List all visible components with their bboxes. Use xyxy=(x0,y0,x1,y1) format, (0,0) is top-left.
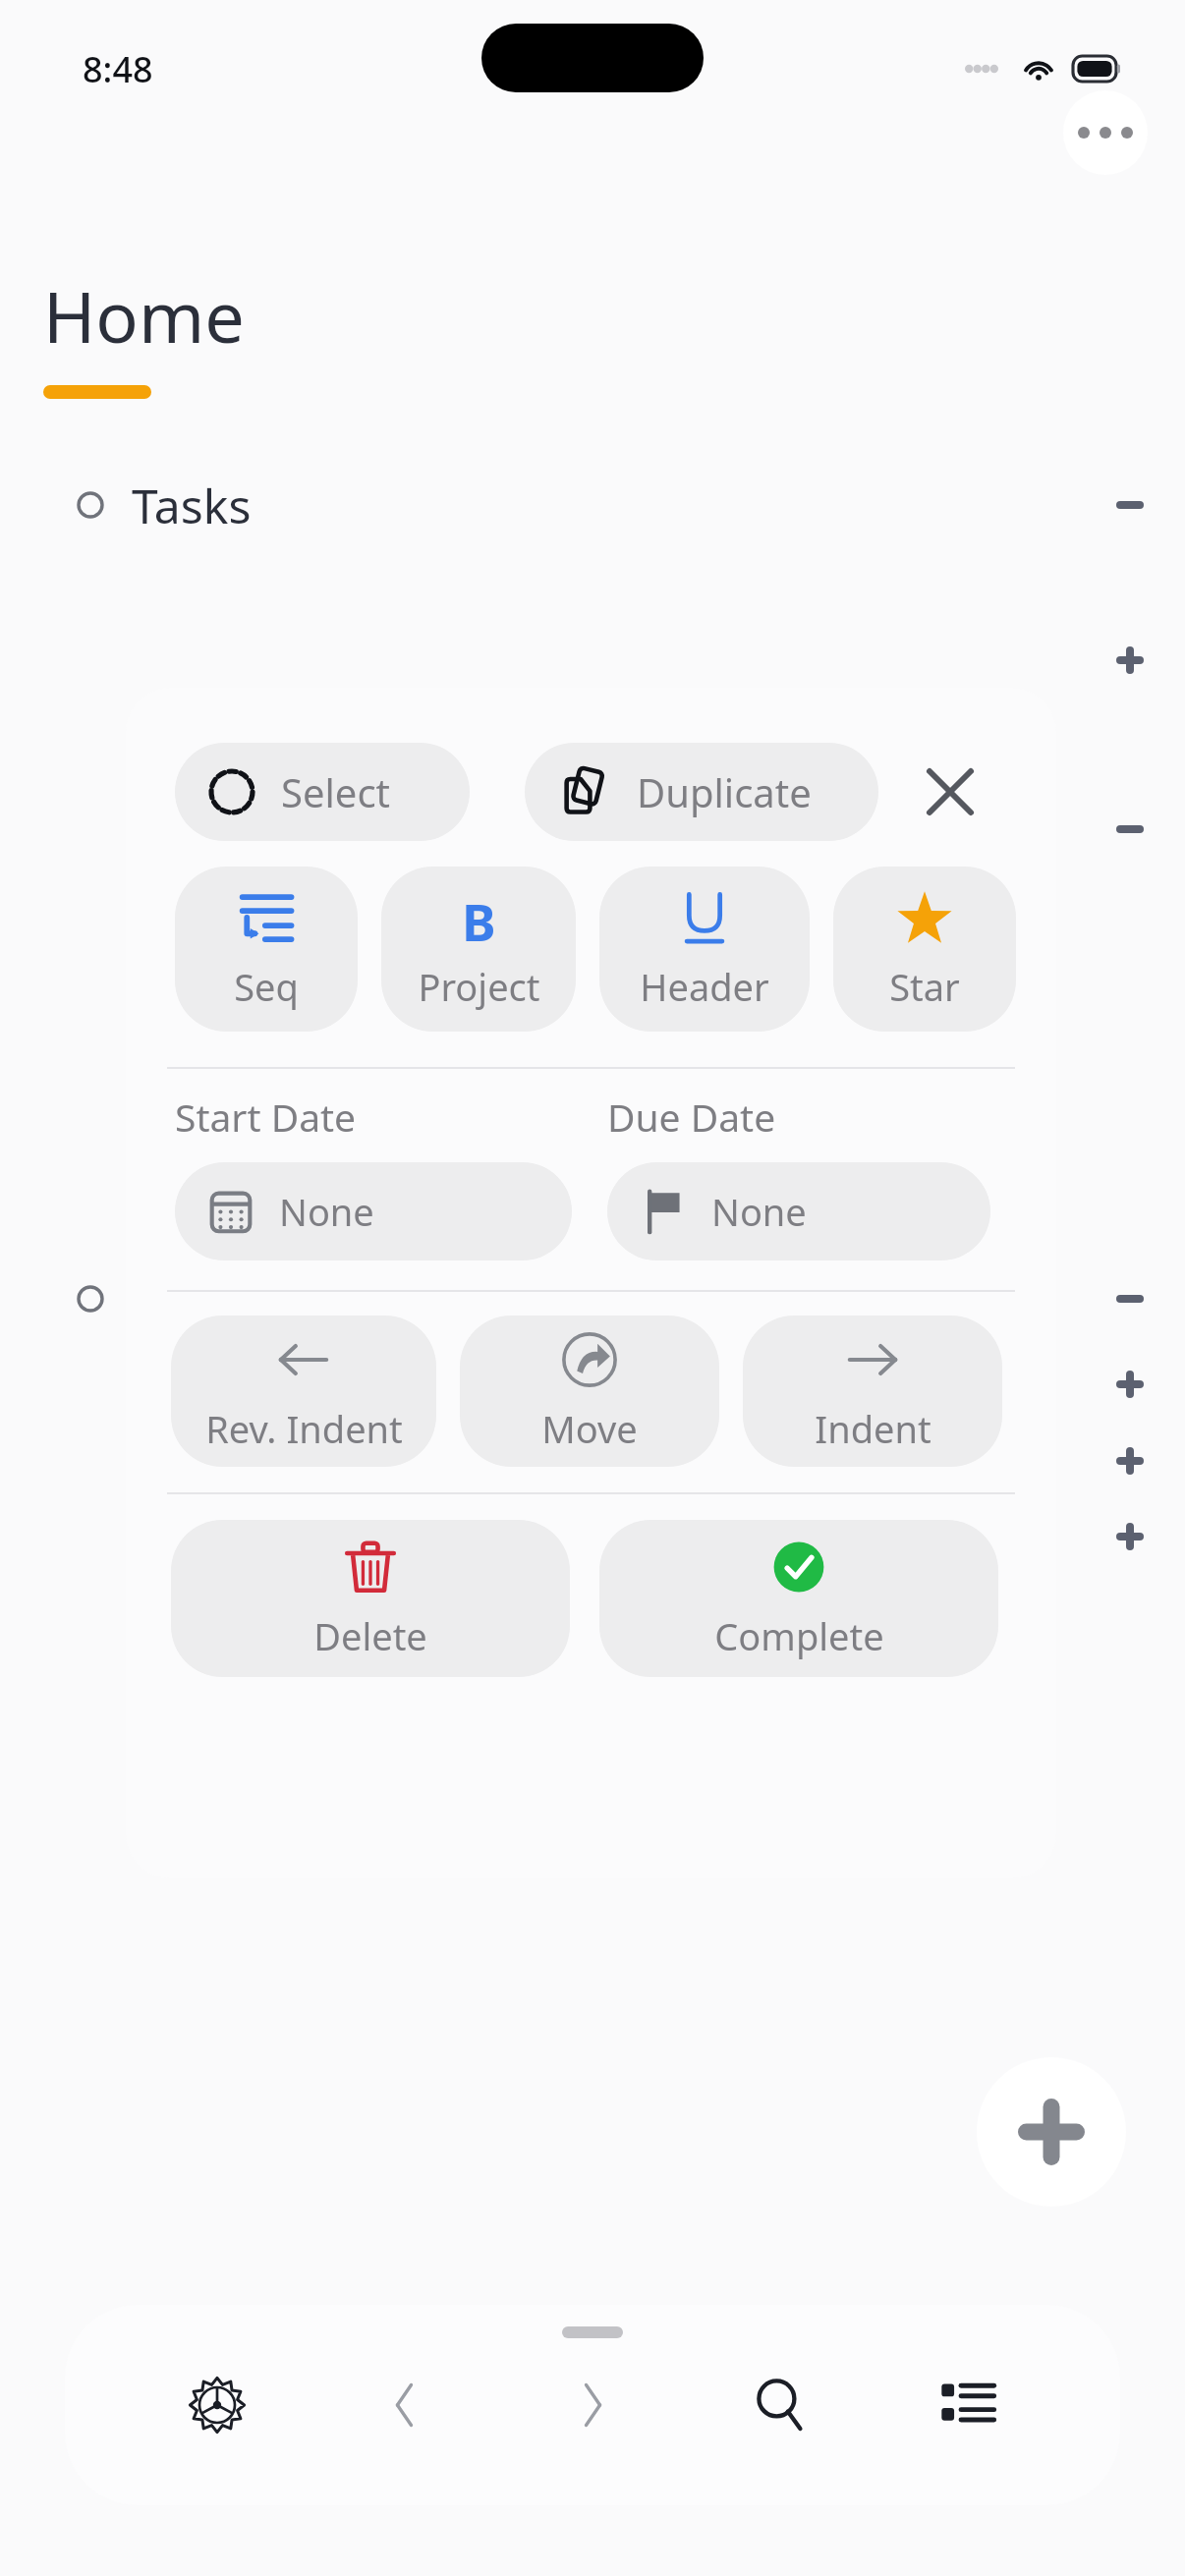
staticText: None xyxy=(711,1186,807,1237)
staticText: Home xyxy=(43,267,245,364)
staticText: Move xyxy=(541,1403,638,1454)
staticText: Duplicate xyxy=(637,765,812,818)
staticText: Indent xyxy=(815,1403,931,1454)
button[interactable]: Personal xyxy=(0,1346,1185,1423)
staticText: Header xyxy=(640,961,769,1012)
button[interactable]: Notes xyxy=(0,1258,1185,1340)
button[interactable]: Star xyxy=(833,867,1016,1032)
button[interactable]: Add xyxy=(1089,623,1171,698)
button[interactable]: Close xyxy=(908,750,992,834)
staticText: Seq xyxy=(234,961,299,1012)
button[interactable]: Work xyxy=(0,1423,1185,1499)
button[interactable]: Complete xyxy=(599,1520,998,1677)
staticText: Rev. Indent xyxy=(205,1403,403,1454)
button[interactable]: Forward xyxy=(528,2340,657,2470)
button[interactable]: None xyxy=(175,1162,572,1260)
button[interactable]: Move xyxy=(460,1316,719,1467)
staticText: None xyxy=(279,1186,374,1237)
button[interactable]: Collapse Tasks xyxy=(1089,464,1171,546)
button[interactable]: Header xyxy=(599,867,810,1032)
button[interactable]: Add item xyxy=(977,2057,1126,2207)
staticText: Star xyxy=(889,961,960,1012)
button[interactable]: Collapse xyxy=(1089,792,1171,867)
staticText: Notes xyxy=(132,1267,262,1331)
button[interactable]: Seq xyxy=(175,867,358,1032)
button[interactable]: Add xyxy=(1089,1499,1171,1574)
button[interactable]: Back xyxy=(340,2340,470,2470)
button[interactable]: B xyxy=(381,867,576,1032)
staticText: Project xyxy=(418,961,540,1012)
staticText: Select xyxy=(281,765,391,818)
staticText: Delete xyxy=(313,1610,427,1661)
staticText: Personal xyxy=(212,1357,382,1413)
button[interactable]: Add under Personal xyxy=(1089,1346,1171,1423)
button[interactable]: Search xyxy=(715,2340,845,2470)
staticText: Complete xyxy=(714,1610,884,1661)
button[interactable]: Tasks xyxy=(0,464,1185,546)
button[interactable]: More options xyxy=(1063,90,1148,175)
button[interactable]: Add under Work xyxy=(1089,1423,1171,1499)
button[interactable]: Delete xyxy=(171,1520,570,1677)
staticText: 8:48 xyxy=(83,45,153,93)
staticText: B xyxy=(462,886,496,949)
button[interactable]: Select xyxy=(175,743,470,841)
staticText: Tasks xyxy=(132,474,252,537)
button[interactable]: List view xyxy=(903,2340,1033,2470)
button[interactable]: Indent xyxy=(743,1316,1002,1467)
button[interactable]: Collapse Notes xyxy=(1089,1258,1171,1340)
button[interactable]: None xyxy=(607,1162,990,1260)
button[interactable]: Rev. Indent xyxy=(171,1316,436,1467)
staticText: Due Date xyxy=(607,1091,776,1143)
button[interactable]: Settings xyxy=(152,2340,282,2470)
staticText: Start Date xyxy=(175,1091,357,1143)
button[interactable]: Duplicate xyxy=(525,743,878,841)
staticText: Work xyxy=(212,1433,314,1489)
